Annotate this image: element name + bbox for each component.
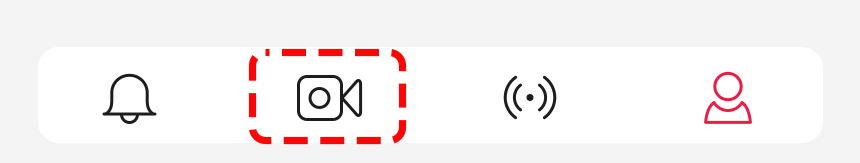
button[interactable]: Live [430, 47, 626, 143]
button[interactable]: Profile [626, 47, 823, 143]
button[interactable]: Notifications [38, 47, 234, 143]
button[interactable]: New FaceTime [234, 47, 430, 143]
